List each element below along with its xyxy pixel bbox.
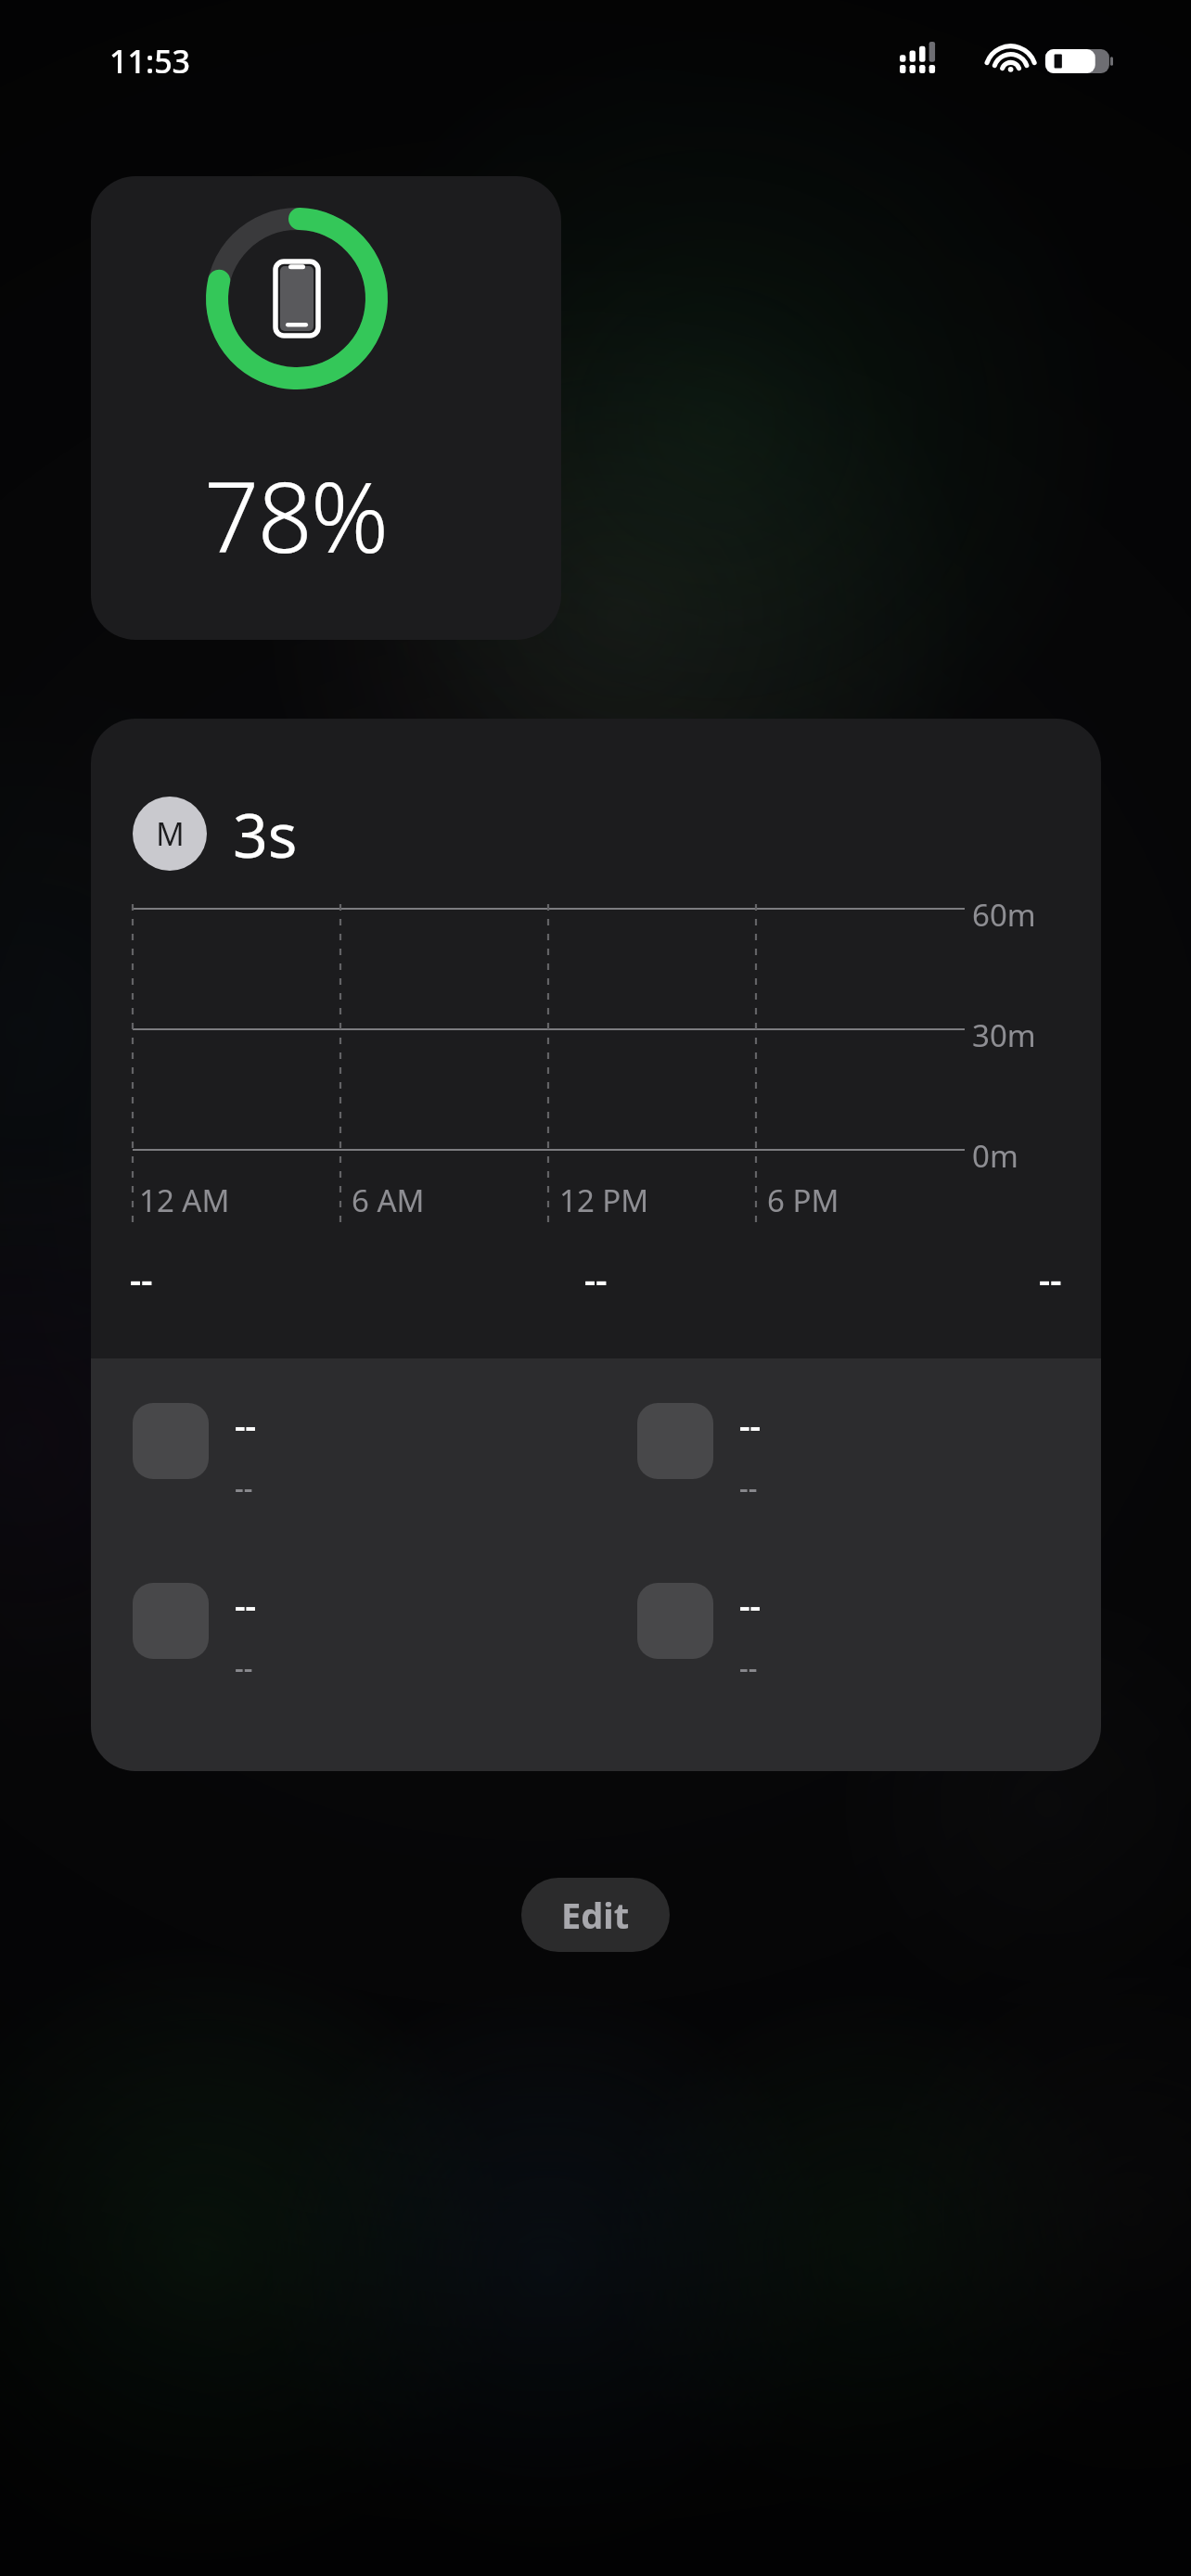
staticText: 60m	[972, 894, 1036, 936]
button[interactable]: --	[637, 1403, 1101, 1507]
staticText: --	[235, 1649, 253, 1687]
staticText: --	[235, 1469, 253, 1507]
staticText: Edit	[561, 1891, 630, 1939]
staticText: --	[130, 1255, 153, 1303]
other: Phone battery 78 percent	[206, 208, 388, 389]
staticText: M	[156, 812, 185, 855]
staticText: 6 AM	[352, 1180, 425, 1221]
staticText: 0m	[972, 1135, 1018, 1177]
button[interactable]: --	[133, 1403, 595, 1507]
staticText: --	[584, 1255, 608, 1303]
staticText: 6 PM	[767, 1180, 839, 1221]
button[interactable]: --	[133, 1583, 595, 1687]
staticText: --	[235, 1403, 257, 1448]
staticText: 11:53	[109, 40, 191, 83]
button[interactable]: Phone battery 78 percent	[91, 176, 561, 640]
staticText: --	[739, 1583, 762, 1628]
button[interactable]: Edit	[521, 1878, 670, 1952]
staticText: 78%	[204, 450, 388, 581]
staticText: 30m	[972, 1014, 1036, 1056]
staticText: --	[1039, 1255, 1062, 1303]
staticText: --	[235, 1583, 257, 1628]
button[interactable]: M	[91, 719, 1101, 1358]
staticText: --	[739, 1469, 758, 1507]
staticText: 12 AM	[139, 1180, 230, 1221]
button[interactable]: --	[637, 1583, 1101, 1687]
staticText: 12 PM	[559, 1180, 649, 1221]
staticText: --	[739, 1649, 758, 1687]
staticText: --	[739, 1403, 762, 1448]
staticText: 3s	[233, 792, 298, 875]
